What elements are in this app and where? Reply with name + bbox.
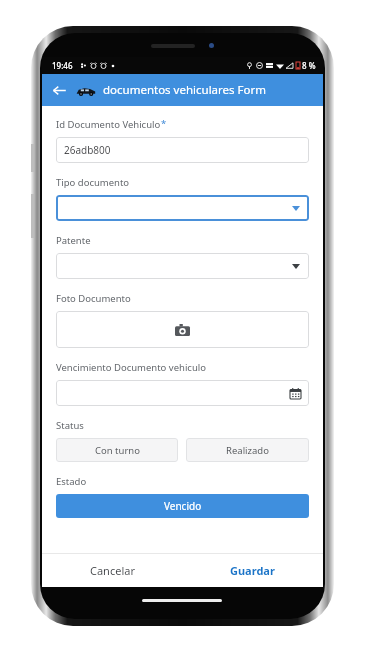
staticText: 19:46	[52, 60, 73, 71]
staticText: Estado	[56, 475, 87, 488]
button[interactable]: Open dropdown	[56, 195, 309, 221]
staticText: 8 %	[302, 60, 316, 71]
button[interactable]: Open dropdown	[56, 253, 309, 279]
staticText: 26adb800	[64, 143, 111, 157]
button[interactable]: 26adb800	[56, 137, 309, 163]
button[interactable]: Vencido	[56, 494, 309, 518]
staticText: documentos vehiculares Form	[103, 82, 266, 98]
button[interactable]: Back	[42, 74, 76, 106]
button[interactable]: Realizado	[186, 438, 309, 462]
button[interactable]: Take photo	[56, 311, 309, 348]
staticText: Patente	[56, 234, 91, 247]
button[interactable]: Con turno	[56, 438, 178, 462]
button[interactable]: Guardar	[182, 553, 323, 587]
staticText: Foto Documento	[56, 292, 131, 305]
staticText: Vencido	[164, 499, 202, 513]
staticText: Con turno	[95, 444, 140, 457]
button[interactable]: Cancelar	[42, 553, 182, 587]
staticText: Status	[56, 419, 84, 432]
staticText: *	[161, 117, 167, 130]
staticText: Vencimiento Documento vehiculo	[56, 361, 206, 374]
staticText: Realizado	[226, 444, 269, 457]
staticText: Cancelar	[90, 563, 135, 578]
button[interactable]: Pick date	[56, 380, 309, 406]
staticText: Tipo documento	[56, 176, 130, 189]
staticText: Id Documento Vehiculo	[56, 118, 161, 131]
staticText: Guardar	[230, 563, 275, 578]
